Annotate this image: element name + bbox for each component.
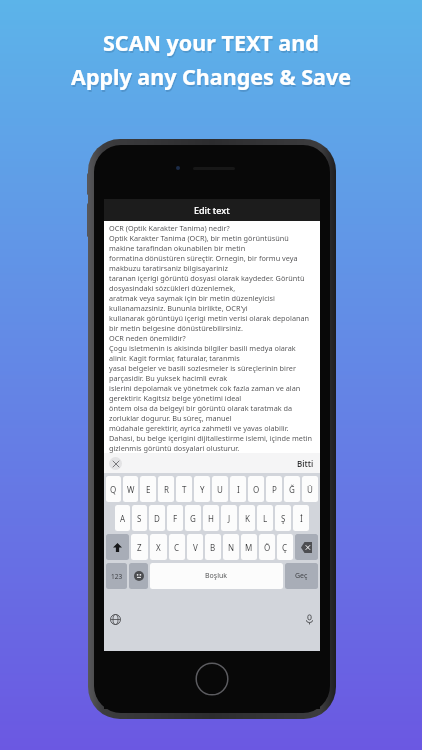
staticText: Çogu isletmenin is akisinda bilgiler bas… <box>109 343 296 353</box>
staticText: N <box>228 542 235 553</box>
staticText: Ğ <box>289 484 295 495</box>
staticText: Ü <box>307 484 313 495</box>
button[interactable]: V <box>187 534 203 560</box>
staticText: Bitti <box>297 458 314 469</box>
button[interactable]: Ç <box>277 534 293 560</box>
button[interactable]: L <box>257 505 273 531</box>
staticText: SCAN your TEXT and <box>104 30 320 59</box>
button[interactable]: Bitti <box>297 458 314 469</box>
button[interactable]: T <box>176 476 192 502</box>
staticText: kullanarak görüntüyü içerigi metin veris… <box>109 313 310 323</box>
staticText: dosyasindaki sözcükleri düzenlemek, <box>109 283 236 293</box>
staticText: bir metin belgesine dönüstürebilirsiniz. <box>109 323 243 333</box>
staticText: Edit text <box>194 204 230 216</box>
button[interactable]: E <box>140 476 156 502</box>
staticText: Boşluk <box>205 571 228 581</box>
button[interactable]: İ <box>293 505 309 531</box>
button[interactable]: W <box>123 476 138 502</box>
staticText: aratmak veya saymak için bir metin düzen… <box>109 293 275 303</box>
staticText: G <box>190 513 196 524</box>
button[interactable]: U <box>212 476 228 502</box>
staticText: H <box>208 513 214 524</box>
button[interactable]: Ü <box>302 476 318 502</box>
button[interactable]: C <box>169 534 185 560</box>
staticText: zorluklar dogurur. Bu süreç, manuel <box>109 413 232 423</box>
staticText: K <box>245 513 250 524</box>
button[interactable]: Ö <box>259 534 275 560</box>
staticText: Dahasi, bu belge içerigini dijitallestir… <box>109 433 312 443</box>
staticText: SCAN your TEXT and <box>103 28 319 57</box>
button[interactable]: Switch language <box>106 610 124 628</box>
staticText: makine tarafindan okunabilen bir metin <box>109 243 246 253</box>
button[interactable]: Z <box>131 534 148 560</box>
staticText: R <box>164 484 169 495</box>
staticText: T <box>182 484 187 495</box>
staticText: makbuzu taratirsaniz bilgisayariniz <box>109 263 228 273</box>
button[interactable]: J <box>221 505 237 531</box>
button[interactable]: OCR (Optik Karakter Tanima) nedir? <box>109 223 318 453</box>
button[interactable]: Edit text <box>104 199 320 221</box>
button[interactable]: 123 <box>106 563 127 589</box>
button[interactable]: G <box>185 505 201 531</box>
button[interactable]: Shift <box>106 534 129 560</box>
staticText: L <box>263 513 268 524</box>
staticText: W <box>127 484 135 495</box>
button[interactable]: S <box>132 505 147 531</box>
staticText: S <box>137 513 142 524</box>
button[interactable]: Ğ <box>284 476 300 502</box>
button[interactable]: R <box>158 476 174 502</box>
staticText: 123 <box>111 572 123 581</box>
button[interactable]: P <box>266 476 282 502</box>
staticText: müdahale gerektirir, ayrica zahmetli ve … <box>109 423 289 433</box>
button[interactable]: F <box>167 505 183 531</box>
staticText: Apply any Changes & Save <box>71 62 352 91</box>
staticText: M <box>245 542 253 553</box>
staticText: İ <box>300 513 303 524</box>
staticText: kullanamazsiniz. Bununla birlikte, OCR'y… <box>109 303 248 313</box>
button[interactable]: M <box>241 534 257 560</box>
staticText: B <box>210 542 216 553</box>
button[interactable]: Home <box>195 662 229 696</box>
staticText: Optik Karakter Tanima (OCR), bir metin g… <box>109 233 289 243</box>
staticText: Ö <box>264 542 271 553</box>
button[interactable]: Dictate <box>300 610 318 628</box>
button[interactable]: A <box>115 505 130 531</box>
staticText: OCR neden önemlidir? <box>109 333 186 343</box>
staticText: Apply any Changes & Save <box>72 64 353 93</box>
button[interactable]: Geç <box>285 563 318 589</box>
staticText: OCR (Optik Karakter Tanima) nedir? <box>109 223 230 233</box>
button[interactable]: N <box>223 534 239 560</box>
button[interactable]: Emoji <box>129 563 148 589</box>
button[interactable]: Clear text <box>109 457 122 470</box>
staticText: V <box>193 542 198 553</box>
button[interactable]: B <box>205 534 221 560</box>
staticText: U <box>217 484 223 495</box>
button[interactable]: O <box>248 476 264 502</box>
staticText: Ç <box>282 542 288 553</box>
button[interactable]: I <box>230 476 246 502</box>
staticText: Geç <box>295 571 308 581</box>
staticText: Q <box>110 484 117 495</box>
button[interactable]: K <box>239 505 255 531</box>
staticText: X <box>156 542 161 553</box>
staticText: formatina dönüstüren süreçtir. Ornegin, … <box>109 253 298 263</box>
staticText: gizlenmis görüntü dosyalari olusturur. <box>109 443 240 453</box>
staticText: J <box>228 513 231 524</box>
button[interactable]: Ş <box>275 505 291 531</box>
staticText: O <box>253 484 260 495</box>
button[interactable]: D <box>149 505 165 531</box>
staticText: Ş <box>281 513 286 524</box>
button[interactable]: Backspace <box>295 534 318 560</box>
staticText: F <box>173 513 178 524</box>
staticText: E <box>146 484 151 495</box>
staticText: D <box>154 513 160 524</box>
button[interactable]: H <box>203 505 219 531</box>
staticText: yasal belgeler ve basili sozlesmeler is … <box>109 363 296 373</box>
staticText: islerini depolamak ve yönetmek cok fazla… <box>109 383 301 393</box>
staticText: I <box>237 484 240 495</box>
button[interactable]: Q <box>106 476 121 502</box>
button[interactable]: Y <box>194 476 210 502</box>
button[interactable]: Boşluk <box>150 563 283 589</box>
button[interactable]: X <box>150 534 167 560</box>
staticText: gerektirir. Kagitsiz belge yönetimi idea… <box>109 393 242 403</box>
